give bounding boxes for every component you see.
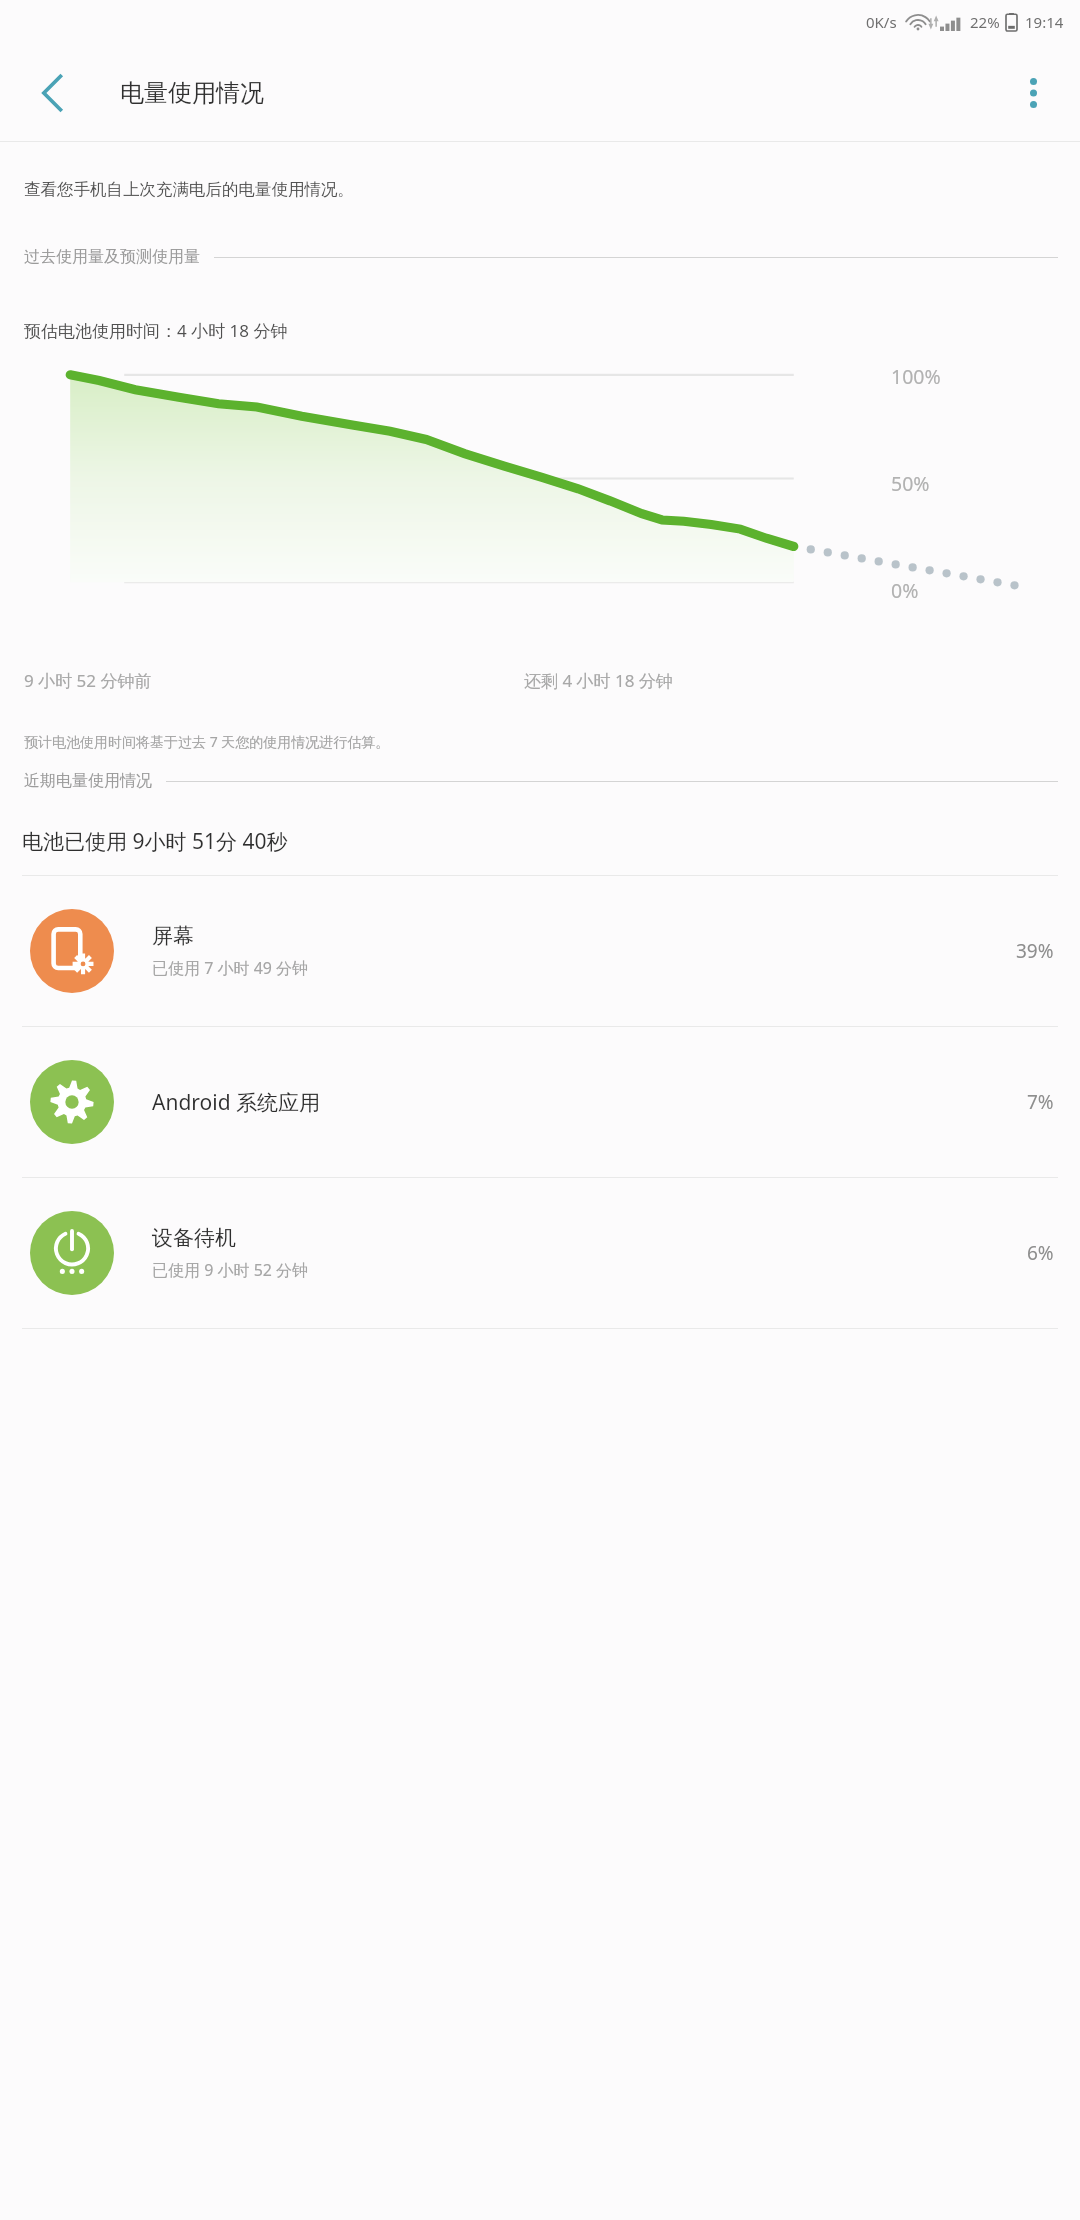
staticText: 屏幕 — [152, 923, 194, 949]
staticText: 已使用 9 小时 52 分钟 — [152, 1259, 309, 1281]
staticText: 设备待机 — [152, 1225, 236, 1251]
staticText: 查看您手机自上次充满电后的电量使用情况。 — [24, 179, 354, 200]
staticText: 6% — [1027, 1240, 1054, 1266]
staticText: 19:14 — [1025, 12, 1064, 32]
staticText: 39% — [1016, 938, 1054, 964]
staticText: 电池已使用 9小时 51分 40秒 — [22, 827, 288, 856]
staticText: 近期电量使用情况 — [24, 771, 152, 791]
staticText: Android 系统应用 — [152, 1088, 321, 1117]
staticText: 已使用 7 小时 49 分钟 — [152, 957, 309, 979]
button[interactable]: Android system — [0, 1027, 1080, 1177]
button[interactable]: Device standby — [0, 1178, 1080, 1328]
other: Android system — [30, 1060, 114, 1144]
staticText: 9 小时 52 分钟前 — [24, 669, 152, 692]
staticText: 7% — [1027, 1089, 1054, 1115]
other: Screen — [30, 909, 114, 993]
other: Device standby — [30, 1211, 114, 1295]
button[interactable]: More options — [1006, 66, 1060, 120]
staticText: 22% — [970, 12, 1000, 32]
staticText: 预估电池使用时间：4 小时 18 分钟 — [24, 319, 288, 342]
button[interactable]: Back — [24, 64, 82, 122]
staticText: 还剩 4 小时 18 分钟 — [524, 669, 673, 692]
staticText: 100% — [891, 363, 941, 390]
button[interactable]: Screen — [0, 876, 1080, 1026]
staticText: 0% — [891, 577, 919, 604]
staticText: 过去使用量及预测使用量 — [24, 247, 200, 267]
staticText: 0K/s — [866, 12, 897, 32]
staticText: 预计电池使用时间将基于过去 7 天您的使用情况进行估算。 — [24, 732, 390, 751]
staticText: 50% — [891, 470, 930, 497]
staticText: 电量使用情况 — [120, 78, 264, 108]
